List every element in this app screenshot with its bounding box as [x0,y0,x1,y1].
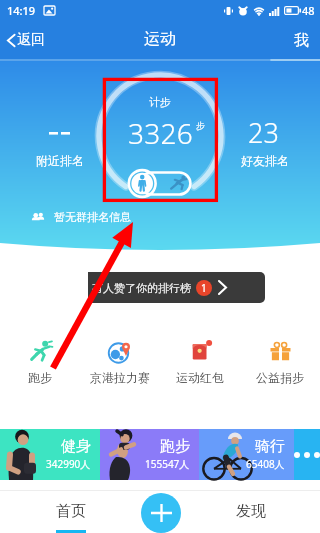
button[interactable]: 返回 [0,21,55,59]
staticText: 附近排名 [36,153,84,168]
staticText: 公益捐步 [256,370,304,385]
staticText: 3326 [128,114,194,152]
button[interactable]: 发现 [211,490,291,533]
staticText: 65408人 [246,457,285,471]
button[interactable]: 骑行 [199,429,294,480]
button[interactable]: 京港拉力赛 [80,338,160,386]
staticText: 骑行 [255,437,285,456]
staticText: 155547人 [145,457,190,471]
staticText: 步 [196,120,205,131]
staticText: 我 [294,31,309,50]
staticText: 健身 [61,437,91,456]
staticText: 发现 [236,502,266,521]
button[interactable]: 运动红包 [160,338,240,386]
staticText: 运动红包 [176,370,224,385]
staticText: 首页 [56,502,86,521]
staticText: 返回 [17,31,45,49]
button[interactable]: Switch walk or run mode [128,169,191,198]
staticText: 342990人 [46,457,91,471]
button[interactable]: Add activity [141,493,181,533]
staticText: 跑步 [28,370,52,385]
button[interactable]: 暂无群排名信息 [31,208,137,226]
staticText: 计步 [149,95,171,109]
staticText: 23 [248,114,279,151]
button[interactable]: 跑步 [0,338,80,386]
staticText: 暂无群排名信息 [54,210,131,224]
staticText: 京港拉力赛 [90,370,150,385]
staticText: 跑步 [160,437,190,456]
button[interactable]: 我 [283,21,320,59]
button[interactable]: 跑步 [100,429,199,480]
staticText: 好友排名 [241,153,289,168]
button[interactable]: More categories [294,429,320,480]
button[interactable]: 首页 [31,490,111,533]
staticText: 48 [302,3,315,18]
staticText: 1 [201,281,207,295]
button[interactable]: 公益捐步 [240,338,320,386]
button[interactable]: 健身 [0,429,100,480]
button[interactable]: 有人赞了你的排行榜 [88,272,265,303]
staticText: 有人赞了你的排行榜 [92,281,191,295]
staticText: 14:19 [7,3,36,18]
staticText: 运动 [144,29,176,49]
